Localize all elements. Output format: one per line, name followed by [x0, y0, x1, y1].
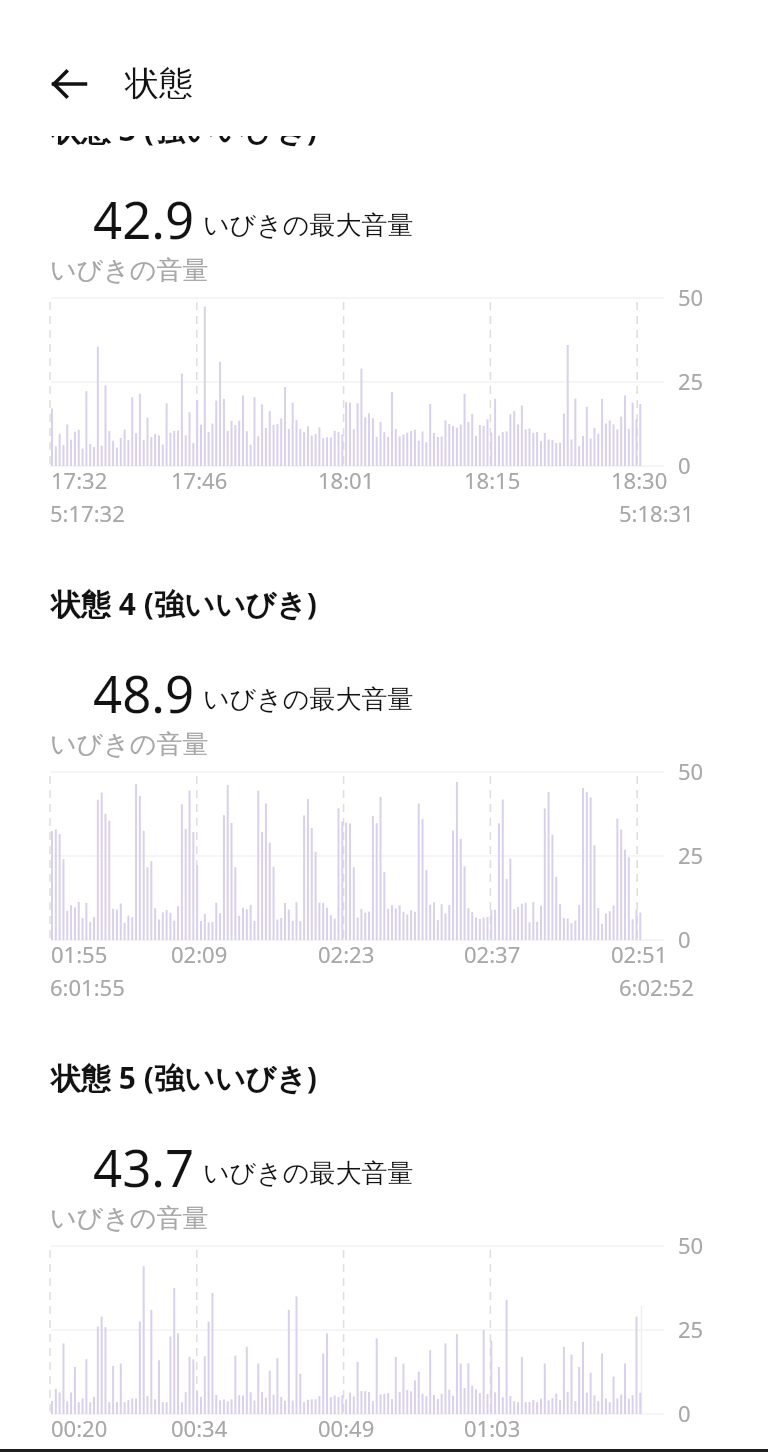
- staticText: いびきの最大音量: [203, 1157, 414, 1190]
- staticText: 18:30: [611, 465, 668, 495]
- staticText: 02:37: [464, 939, 521, 969]
- staticText: いびきの最大音量: [203, 683, 414, 716]
- button[interactable]: 状態 5 (強いいびき): [38, 1046, 378, 1102]
- staticText: 02:09: [171, 939, 228, 969]
- staticText: 00:20: [51, 1413, 108, 1443]
- staticText: 01:03: [464, 1413, 521, 1443]
- staticText: 02:23: [318, 939, 375, 969]
- staticText: 6:01:55: [50, 972, 125, 1002]
- staticText: 0: [678, 450, 691, 480]
- staticText: 48.9: [93, 658, 195, 727]
- staticText: 状態 4 (強いいびき): [51, 583, 317, 624]
- staticText: いびきの音量: [50, 254, 209, 287]
- staticText: 42.9: [93, 184, 195, 253]
- staticText: 18:15: [464, 465, 521, 495]
- staticText: 43.7: [93, 1132, 195, 1201]
- staticText: 50: [678, 1230, 704, 1260]
- staticText: 00:34: [171, 1413, 228, 1443]
- staticText: 6:02:52: [619, 972, 694, 1002]
- staticText: いびきの音量: [50, 1202, 209, 1235]
- staticText: 状態 5 (強いいびき): [51, 1057, 317, 1098]
- button[interactable]: 状態 4 (強いいびき): [38, 572, 378, 628]
- staticText: 0: [678, 1398, 691, 1428]
- staticText: 25: [678, 840, 704, 870]
- staticText: いびきの最大音量: [203, 209, 414, 242]
- staticText: 17:46: [171, 465, 228, 495]
- staticText: 状態 3 (強いいびき): [51, 109, 317, 150]
- button[interactable]: 状態: [108, 44, 228, 112]
- staticText: いびきの音量: [50, 728, 209, 761]
- staticText: 00:49: [318, 1413, 375, 1443]
- button[interactable]: Back: [36, 52, 100, 116]
- staticText: 50: [678, 756, 704, 786]
- staticText: 25: [678, 366, 704, 396]
- staticText: 02:51: [611, 939, 668, 969]
- staticText: 17:32: [51, 465, 108, 495]
- staticText: 5:17:32: [50, 498, 125, 528]
- staticText: 0: [678, 924, 691, 954]
- staticText: 25: [678, 1314, 704, 1344]
- button[interactable]: 状態 3 (強いいびき): [38, 98, 378, 154]
- staticText: 5:18:31: [619, 498, 694, 528]
- staticText: 50: [678, 282, 704, 312]
- staticText: 状態: [125, 62, 193, 105]
- staticText: 18:01: [318, 465, 375, 495]
- staticText: 01:55: [51, 939, 108, 969]
